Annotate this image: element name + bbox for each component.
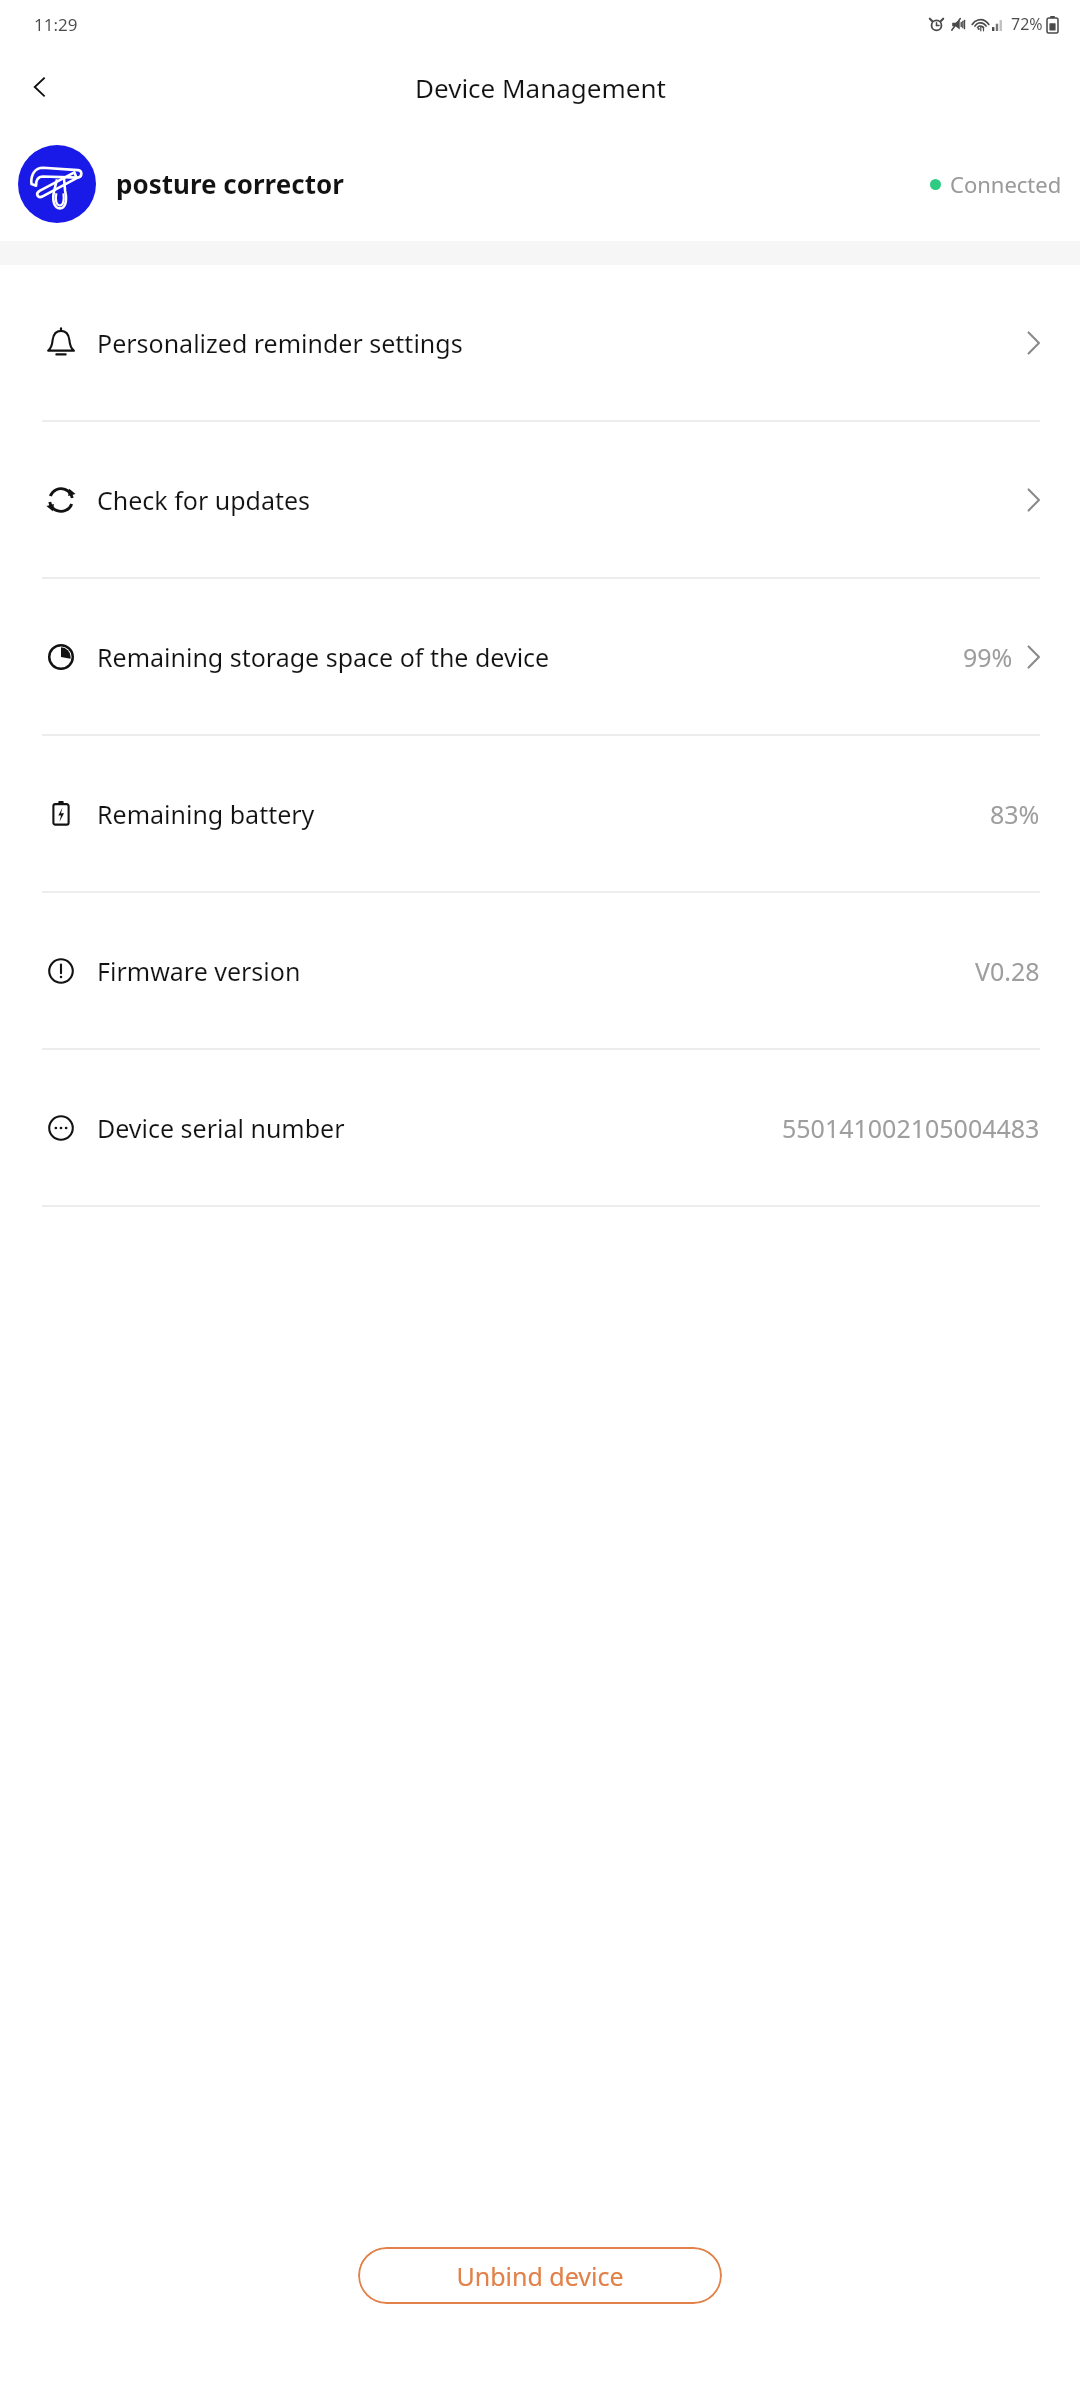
button[interactable]: Remaining battery bbox=[0, 736, 1080, 891]
button[interactable]: Check for updates bbox=[0, 422, 1080, 577]
staticText: Device Management bbox=[415, 70, 666, 105]
staticText: 83% bbox=[990, 797, 1040, 831]
staticText: Remaining battery bbox=[97, 797, 315, 831]
button[interactable]: Remaining storage space of the device bbox=[0, 579, 1080, 734]
button[interactable]: Device serial number bbox=[0, 1050, 1080, 1205]
button[interactable]: Back bbox=[16, 63, 64, 111]
staticText: 72% bbox=[1011, 13, 1043, 35]
button[interactable]: Personalized reminder settings bbox=[0, 265, 1080, 420]
staticText: 550141002105004483 bbox=[782, 1111, 1040, 1145]
staticText: 99% bbox=[963, 640, 1013, 674]
button[interactable]: Firmware version bbox=[0, 893, 1080, 1048]
staticText: Connected bbox=[950, 169, 1062, 199]
staticText: 11:29 bbox=[34, 13, 78, 36]
staticText: posture corrector bbox=[116, 166, 344, 201]
staticText: Remaining storage space of the device bbox=[97, 640, 550, 674]
staticText: Device serial number bbox=[97, 1111, 345, 1145]
staticText: V0.28 bbox=[975, 954, 1040, 988]
button[interactable]: Unbind device bbox=[358, 2247, 722, 2304]
staticText: Personalized reminder settings bbox=[97, 326, 463, 360]
staticText: Firmware version bbox=[97, 954, 301, 988]
staticText: Unbind device bbox=[456, 2259, 624, 2293]
staticText: Check for updates bbox=[97, 483, 311, 517]
